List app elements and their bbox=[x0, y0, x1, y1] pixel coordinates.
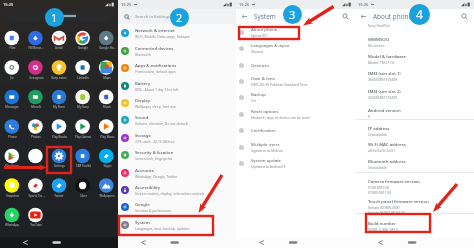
staticText: Touch panel firmware version bbox=[368, 198, 429, 204]
button[interactable]: Battery bbox=[118, 77, 236, 94]
button[interactable]: Google bbox=[118, 198, 236, 215]
button[interactable]: Build number bbox=[368, 220, 463, 232]
staticText: Battery bbox=[135, 80, 151, 86]
staticText: V1000.0011.00 bbox=[368, 190, 392, 195]
staticText: Multiple users bbox=[251, 141, 280, 147]
button[interactable]: Security & location bbox=[118, 146, 236, 163]
staticText: Network & internet bbox=[135, 27, 175, 33]
staticText: Messages bbox=[5, 105, 19, 109]
staticText: 3 bbox=[289, 7, 296, 22]
staticText: Sony OnePlus bbox=[368, 23, 390, 28]
button[interactable]: Step 4 bbox=[409, 4, 430, 25]
staticText: Screen readers, display, interaction con… bbox=[135, 191, 205, 196]
staticText: 356592891173459 bbox=[368, 77, 398, 82]
button[interactable]: Camera firmware version bbox=[368, 178, 463, 195]
staticText: 15:26 bbox=[358, 2, 369, 7]
button[interactable]: IMEI (sim slot 1) bbox=[368, 70, 463, 82]
staticText: Files bbox=[9, 46, 16, 50]
button[interactable]: Search bbox=[342, 13, 349, 20]
staticText: IP address bbox=[368, 125, 390, 131]
staticText: Gboard bbox=[251, 49, 263, 54]
staticText: WMMSOO bbox=[368, 36, 390, 42]
staticText: Snapchat bbox=[6, 194, 19, 198]
button[interactable]: Network & internet bbox=[118, 24, 236, 41]
button[interactable]: Apps & notifications bbox=[118, 59, 236, 76]
button[interactable]: Display bbox=[118, 94, 236, 111]
staticText: Settings bbox=[54, 164, 65, 168]
staticText: Volume, vibration, Do not disturb bbox=[135, 121, 188, 126]
staticText: About phone bbox=[251, 26, 278, 32]
button[interactable]: Search in Settings bbox=[118, 9, 236, 24]
button[interactable]: Reset options bbox=[236, 106, 355, 122]
button[interactable]: WMMSOO bbox=[368, 36, 463, 48]
button[interactable]: Sound bbox=[118, 111, 236, 128]
staticText: Play Games bbox=[75, 135, 91, 139]
staticText: My Sony bbox=[77, 105, 89, 109]
staticText: Google bbox=[135, 201, 150, 207]
staticText: Play Books bbox=[52, 135, 67, 139]
staticText: Screen lock, fingerprint bbox=[135, 156, 172, 161]
button[interactable]: Touch panel firmware version bbox=[368, 198, 463, 215]
button[interactable]: Step 1 bbox=[45, 8, 64, 27]
button[interactable]: Multiple users bbox=[236, 139, 355, 155]
staticText: Maps bbox=[103, 76, 111, 80]
staticText: System bbox=[254, 12, 276, 21]
staticText: Reset options bbox=[251, 108, 279, 114]
button[interactable]: Languages & input bbox=[236, 40, 355, 56]
staticText: System bbox=[135, 219, 150, 225]
button[interactable]: About phone bbox=[236, 24, 355, 40]
staticText: Wi-Fi, Mobile, Data usage, Hotspot bbox=[135, 34, 190, 39]
button[interactable]: Accessibility bbox=[118, 181, 236, 198]
staticText: Accessibility bbox=[135, 184, 160, 190]
button[interactable]: Search bbox=[461, 13, 468, 20]
staticText: Apps & notifications bbox=[135, 62, 177, 68]
button[interactable]: IP address bbox=[368, 125, 463, 137]
staticText: No service bbox=[368, 43, 385, 48]
staticText: Unavailable bbox=[368, 132, 387, 137]
button[interactable]: Model & hardware bbox=[368, 53, 463, 65]
button[interactable]: Gestures bbox=[236, 57, 355, 73]
staticText: Phone bbox=[8, 135, 17, 139]
staticText: 356595891173459 bbox=[368, 95, 398, 100]
button[interactable]: Bluetooth address bbox=[368, 158, 463, 170]
button[interactable]: Step 3 bbox=[283, 5, 302, 24]
staticText: Sonata B1007-08-04-17 bbox=[368, 210, 405, 215]
staticText: 1 bbox=[51, 10, 58, 25]
button[interactable]: Wi-Fi MAC address bbox=[368, 141, 463, 153]
staticText: Wi-Fi MAC address bbox=[368, 141, 406, 147]
staticText: Bluetooth address bbox=[368, 158, 406, 164]
button[interactable]: Backup bbox=[236, 89, 355, 105]
button[interactable]: Step 2 bbox=[170, 8, 189, 27]
staticText: Unavailable bbox=[368, 165, 387, 170]
staticText: 80% - About 1 day 3 hrs left bbox=[135, 87, 179, 92]
button[interactable]: Connected devices bbox=[118, 42, 236, 59]
staticText: Play Store bbox=[5, 164, 19, 168]
staticText: Photos bbox=[31, 135, 41, 139]
staticText: My Store bbox=[53, 105, 65, 109]
staticText: Xperia XZ1 bbox=[251, 33, 268, 38]
staticText: Connected devices bbox=[135, 45, 174, 51]
staticText: Security & location bbox=[135, 149, 174, 155]
staticText: Sound bbox=[135, 114, 149, 120]
staticText: Permissions, default apps bbox=[135, 69, 176, 74]
staticText: Search in Settings bbox=[135, 14, 171, 20]
staticText: System update bbox=[251, 157, 282, 163]
button[interactable]: Sony OnePlus bbox=[368, 23, 463, 28]
button[interactable]: IMEI (sim slot 2) bbox=[368, 88, 463, 100]
staticText: Model: TM-1174 bbox=[368, 60, 394, 65]
staticText: IMEI (sim slot 2) bbox=[368, 88, 401, 94]
button[interactable]: System bbox=[118, 216, 236, 233]
button[interactable]: Search apps bbox=[7, 11, 112, 21]
button[interactable]: Date & time bbox=[236, 73, 355, 89]
staticText: On bbox=[251, 98, 256, 103]
button[interactable]: Certification bbox=[236, 122, 355, 138]
staticText: Languages, time, backup, updates bbox=[135, 226, 190, 231]
staticText: YouTube bbox=[30, 223, 42, 227]
staticText: FB Messe... bbox=[28, 46, 44, 50]
button[interactable]: Accounts bbox=[118, 164, 236, 181]
button[interactable]: Back bbox=[241, 13, 248, 20]
button[interactable]: Android version bbox=[368, 107, 463, 119]
button[interactable]: Back bbox=[360, 13, 367, 20]
button[interactable]: System update bbox=[236, 155, 355, 171]
button[interactable]: Storage bbox=[118, 129, 236, 146]
